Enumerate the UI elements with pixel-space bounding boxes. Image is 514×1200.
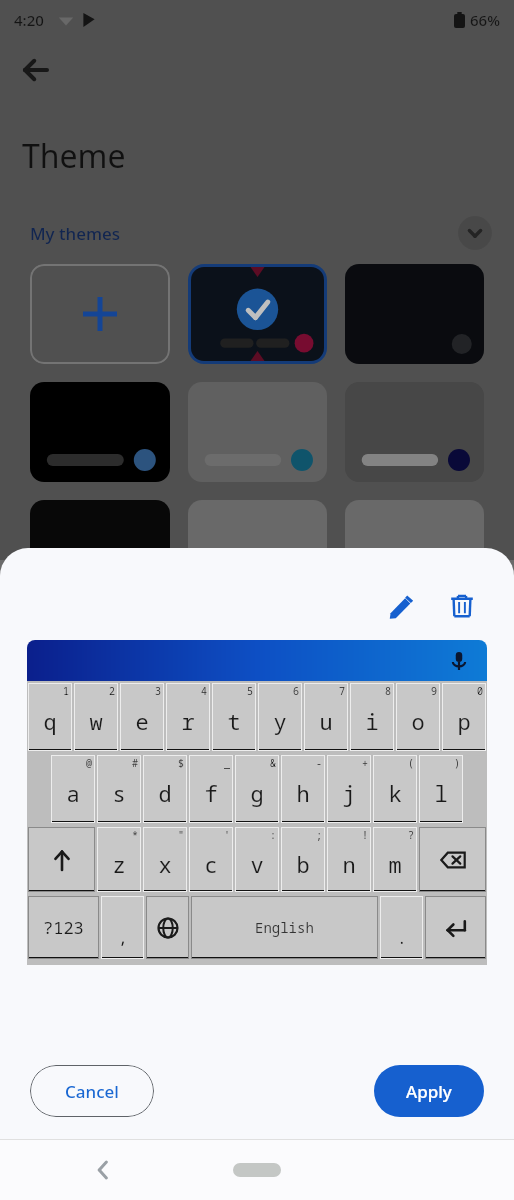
staticText: ' (224, 828, 230, 842)
staticText: 5 (247, 684, 253, 698)
staticText: c (204, 849, 218, 879)
staticText: English (255, 918, 314, 937)
button[interactable]: Delete (440, 584, 484, 628)
button[interactable]: ' (189, 827, 233, 892)
staticText: x (158, 849, 172, 879)
button[interactable]: 3 (120, 683, 164, 751)
button[interactable]: $ (143, 755, 187, 823)
button[interactable]: Back (84, 1150, 124, 1190)
staticText: ) (454, 756, 460, 770)
staticText: 8 (385, 684, 391, 698)
button[interactable]: 7 (304, 683, 348, 751)
staticText: t (227, 706, 241, 736)
button[interactable]: ( (373, 755, 417, 823)
staticText: h (296, 778, 310, 808)
button[interactable] (345, 264, 484, 364)
button[interactable] (30, 500, 170, 600)
other: Change language (157, 917, 179, 939)
staticText: ?123 (43, 916, 84, 939)
staticText: : (270, 828, 276, 842)
other: Shift (51, 849, 73, 871)
staticText: " (178, 828, 184, 842)
button[interactable]: 5 (212, 683, 256, 751)
staticText: q (43, 706, 57, 736)
staticText: u (319, 706, 333, 736)
staticText: 7 (339, 684, 345, 698)
button[interactable]: English (191, 896, 378, 959)
staticText: k (388, 778, 402, 808)
button[interactable]: * (97, 827, 141, 892)
staticText: 0 (477, 684, 483, 698)
button[interactable]: ! (327, 827, 371, 892)
button[interactable]: Enter (425, 896, 486, 959)
staticText: Cancel (65, 1080, 119, 1103)
button[interactable]: Edit (380, 584, 424, 628)
staticText: b (296, 849, 310, 879)
button[interactable]: 1 (28, 683, 72, 751)
staticText: 3 (155, 684, 161, 698)
button[interactable]: 0 (442, 683, 486, 751)
staticText: ? (408, 828, 414, 842)
button[interactable]: Apply (374, 1065, 484, 1117)
staticText: l (434, 778, 448, 808)
button[interactable]: ) (419, 755, 463, 823)
button[interactable]: : (235, 827, 279, 892)
staticText: 2 (109, 684, 115, 698)
staticText: z (112, 849, 126, 879)
button[interactable]: # (97, 755, 141, 823)
button[interactable]: - (281, 755, 325, 823)
staticText: ( (408, 756, 414, 770)
staticText: . (397, 927, 407, 949)
button[interactable] (30, 382, 170, 482)
button[interactable] (188, 500, 327, 600)
staticText: p (457, 706, 471, 736)
button[interactable]: Back (14, 48, 58, 92)
staticText: - (316, 756, 322, 770)
button[interactable]: Change language (146, 896, 189, 959)
staticText: & (270, 756, 276, 770)
button[interactable] (188, 382, 327, 482)
button[interactable]: . (380, 896, 423, 959)
button[interactable]: 6 (258, 683, 302, 751)
staticText: o (411, 706, 425, 736)
staticText: ! (362, 828, 368, 842)
staticText: r (181, 706, 195, 736)
staticText: $ (178, 756, 184, 770)
button[interactable]: " (143, 827, 187, 892)
staticText: y (273, 706, 287, 736)
button[interactable]: _ (189, 755, 233, 823)
other: Backspace (440, 847, 466, 873)
button[interactable] (345, 382, 484, 482)
staticText: Apply (406, 1080, 452, 1103)
button[interactable]: 4 (166, 683, 210, 751)
button[interactable]: Backspace (419, 827, 486, 892)
staticText: g (250, 778, 264, 808)
staticText: w (89, 706, 103, 736)
button[interactable]: Shift (28, 827, 95, 892)
staticText: a (66, 778, 80, 808)
button[interactable]: ? (373, 827, 417, 892)
button[interactable]: ; (281, 827, 325, 892)
button[interactable] (345, 500, 484, 600)
button[interactable] (191, 267, 324, 361)
button[interactable]: 9 (396, 683, 440, 751)
button[interactable]: 2 (74, 683, 118, 751)
staticText: i (365, 706, 379, 736)
button[interactable]: 8 (350, 683, 394, 751)
staticText: s (112, 778, 126, 808)
button[interactable]: & (235, 755, 279, 823)
button[interactable]: + (327, 755, 371, 823)
button[interactable]: Add theme (30, 264, 170, 364)
button[interactable]: Voice input (445, 647, 473, 675)
button[interactable]: @ (51, 755, 95, 823)
button[interactable]: Expand (458, 216, 492, 250)
other: Enter (445, 917, 467, 939)
button[interactable]: Home (233, 1163, 281, 1177)
staticText: + (362, 756, 368, 770)
button[interactable]: ?123 (28, 896, 99, 959)
staticText: m (388, 849, 402, 879)
staticText: My themes (30, 222, 121, 245)
button[interactable]: Cancel (30, 1065, 154, 1117)
button[interactable]: , (101, 896, 144, 959)
staticText: 66% (470, 10, 500, 30)
